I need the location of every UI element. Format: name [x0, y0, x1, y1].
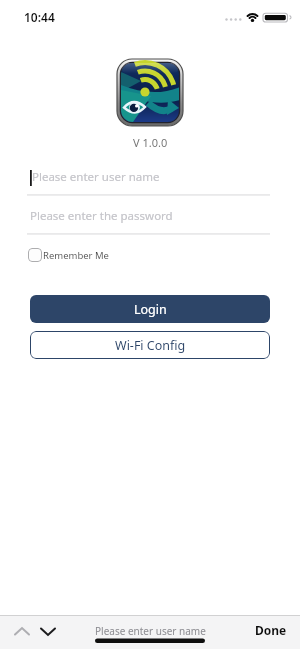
- button[interactable]: Wi-Fi Config: [30, 331, 270, 359]
- staticText: Remember Me: [43, 249, 109, 262]
- button[interactable]: Done: [248, 619, 294, 641]
- staticText: Please enter the password: [30, 208, 173, 224]
- staticText: Done: [255, 622, 287, 638]
- staticText: V 1.0.0: [133, 135, 168, 150]
- staticText: Login: [134, 301, 167, 318]
- button[interactable]: Please enter user name: [26, 164, 274, 196]
- button[interactable]: Login: [30, 295, 270, 323]
- staticText: Please enter user name: [32, 169, 160, 185]
- staticText: Wi-Fi Config: [115, 337, 186, 354]
- button[interactable]: Remember Me: [26, 245, 116, 265]
- staticText: Please enter user name: [95, 624, 206, 638]
- button[interactable]: [12, 620, 34, 644]
- staticText: 10:44: [24, 9, 55, 25]
- button[interactable]: [38, 620, 60, 644]
- button[interactable]: Please enter the password: [26, 203, 274, 235]
